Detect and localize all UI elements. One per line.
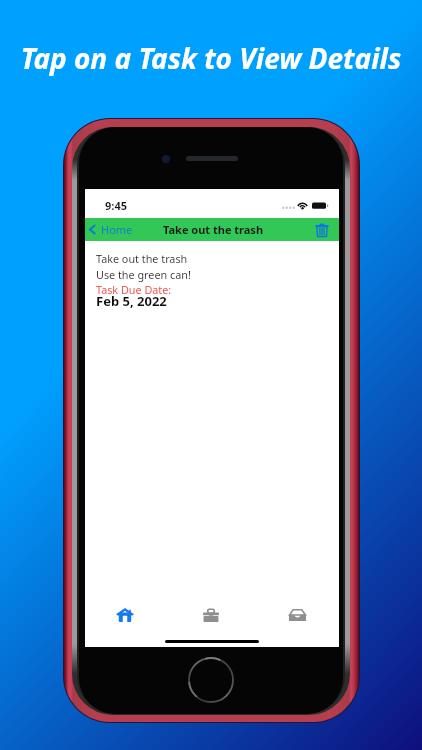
- staticText: Task Due Date:: [96, 282, 172, 297]
- button[interactable]: Inbox: [274, 599, 320, 631]
- button[interactable]: Delete task: [315, 223, 339, 237]
- staticText: Tap on a Task to View Details: [0, 39, 422, 77]
- button[interactable]: Home: [102, 599, 148, 631]
- staticText: 9:45: [105, 198, 127, 213]
- staticText: Feb 5, 2022: [96, 292, 167, 310]
- staticText: Take out the trash: [96, 251, 188, 266]
- button[interactable]: Tasks: [188, 599, 234, 631]
- button[interactable]: Home: [85, 222, 139, 237]
- staticText: Use the green can!: [96, 267, 191, 282]
- staticText: Take out the trash: [163, 222, 264, 237]
- staticText: Home: [101, 222, 133, 237]
